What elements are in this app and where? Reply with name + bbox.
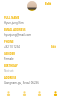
button[interactable]: Edit profile: [44, 1, 53, 7]
button[interactable]: GENDER: [0, 49, 64, 61]
staticText: Gangnam-gu, Seoul 06236: [4, 81, 39, 85]
staticText: EMAIL ADDRESS: [4, 28, 26, 32]
staticText: Hyun-jung Kim: [4, 21, 24, 25]
button[interactable]: PHONE: [0, 37, 64, 49]
button[interactable]: BIRTHDAY: [0, 61, 64, 73]
button[interactable]: Search: [18, 87, 31, 100]
staticText: FULL NAME: [4, 16, 20, 20]
staticText: Edit: [45, 2, 52, 6]
staticText: Female: [4, 57, 14, 61]
staticText: ADDRESS: [4, 76, 17, 80]
staticText: Not set: [4, 69, 14, 73]
button[interactable]: Home: [2, 87, 15, 100]
staticText: Edit: [51, 45, 57, 49]
staticText: hyunjung@mail.com: [4, 33, 32, 37]
button[interactable]: ADDRESS: [0, 73, 64, 85]
staticText: BIRTHDAY: [4, 64, 18, 68]
staticText: GENDER: [4, 52, 16, 56]
button[interactable]: EMAIL ADDRESS: [0, 25, 64, 37]
staticText: +82 10 1234: [4, 45, 20, 49]
button[interactable]: FULL NAME: [0, 13, 64, 25]
button[interactable]: Account: [49, 87, 62, 100]
button[interactable]: Orders: [33, 87, 46, 100]
button[interactable]: Profile photo: [27, 1, 37, 11]
staticText: PHONE: [4, 40, 14, 44]
